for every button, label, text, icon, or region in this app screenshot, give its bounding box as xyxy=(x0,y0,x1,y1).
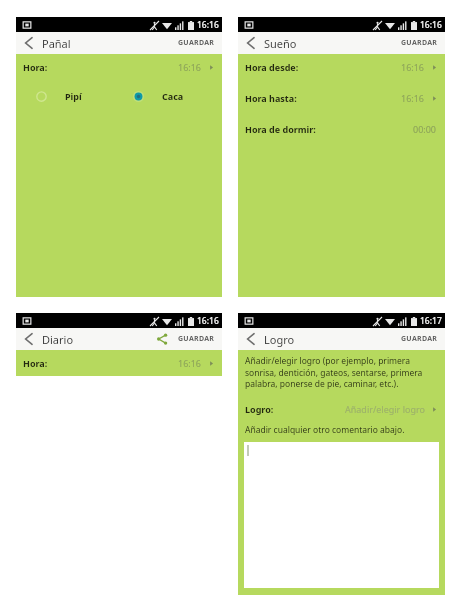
staticText: Hora: xyxy=(23,61,48,73)
staticText: Hora desde: xyxy=(245,61,299,73)
staticText: Pipí xyxy=(65,90,82,102)
button[interactable]: Share xyxy=(153,330,171,348)
button[interactable]: Hora: xyxy=(16,54,222,80)
button[interactable]: Caca xyxy=(119,86,216,106)
staticText: 16:16 xyxy=(420,19,442,31)
staticText: Logro xyxy=(264,332,295,347)
staticText: 16:17 xyxy=(420,315,442,327)
staticText: Pañal xyxy=(42,36,71,51)
button[interactable]: GUARDAR xyxy=(175,35,218,51)
staticText: Hora hasta: xyxy=(245,92,297,104)
button[interactable]: Hora: xyxy=(16,350,222,376)
button[interactable]: Hora hasta: xyxy=(238,85,445,111)
staticText: Añadir/elegir logro (por ejemplo, primer… xyxy=(245,355,438,390)
staticText: 00:00 xyxy=(413,123,437,135)
staticText: Sueño xyxy=(264,36,297,51)
staticText: GUARDAR xyxy=(178,334,215,344)
button[interactable]: Logro: xyxy=(238,396,445,422)
staticText: Logro: xyxy=(245,403,274,415)
staticText: 16:16 xyxy=(401,61,425,73)
staticText: GUARDAR xyxy=(178,38,215,48)
staticText: GUARDAR xyxy=(401,38,438,48)
button[interactable]: GUARDAR xyxy=(398,35,441,51)
button[interactable]: Back xyxy=(20,330,38,348)
button[interactable]: Back xyxy=(242,330,260,348)
button[interactable]: GUARDAR xyxy=(175,331,218,347)
staticText: Añadir cualquier otro comentario abajo. xyxy=(245,424,405,436)
staticText: Caca xyxy=(162,90,184,102)
staticText: 16:16 xyxy=(197,315,219,327)
staticText: Hora: xyxy=(23,357,48,369)
button[interactable]: GUARDAR xyxy=(398,331,441,347)
staticText: Hora de dormir: xyxy=(245,123,316,135)
button[interactable]: Pipí xyxy=(22,86,119,106)
staticText: 16:16 xyxy=(178,357,202,369)
button[interactable]: Back xyxy=(242,34,260,52)
button[interactable]: Hora desde: xyxy=(238,54,445,80)
staticText: 16:16 xyxy=(197,19,219,31)
staticText: GUARDAR xyxy=(401,334,438,344)
staticText: 16:16 xyxy=(178,61,202,73)
staticText: Diario xyxy=(42,332,74,347)
staticText: 16:16 xyxy=(401,92,425,104)
staticText: Añadir/elegir logro xyxy=(345,403,425,415)
button[interactable]: Hora de dormir: xyxy=(238,116,445,142)
button[interactable]: Back xyxy=(20,34,38,52)
